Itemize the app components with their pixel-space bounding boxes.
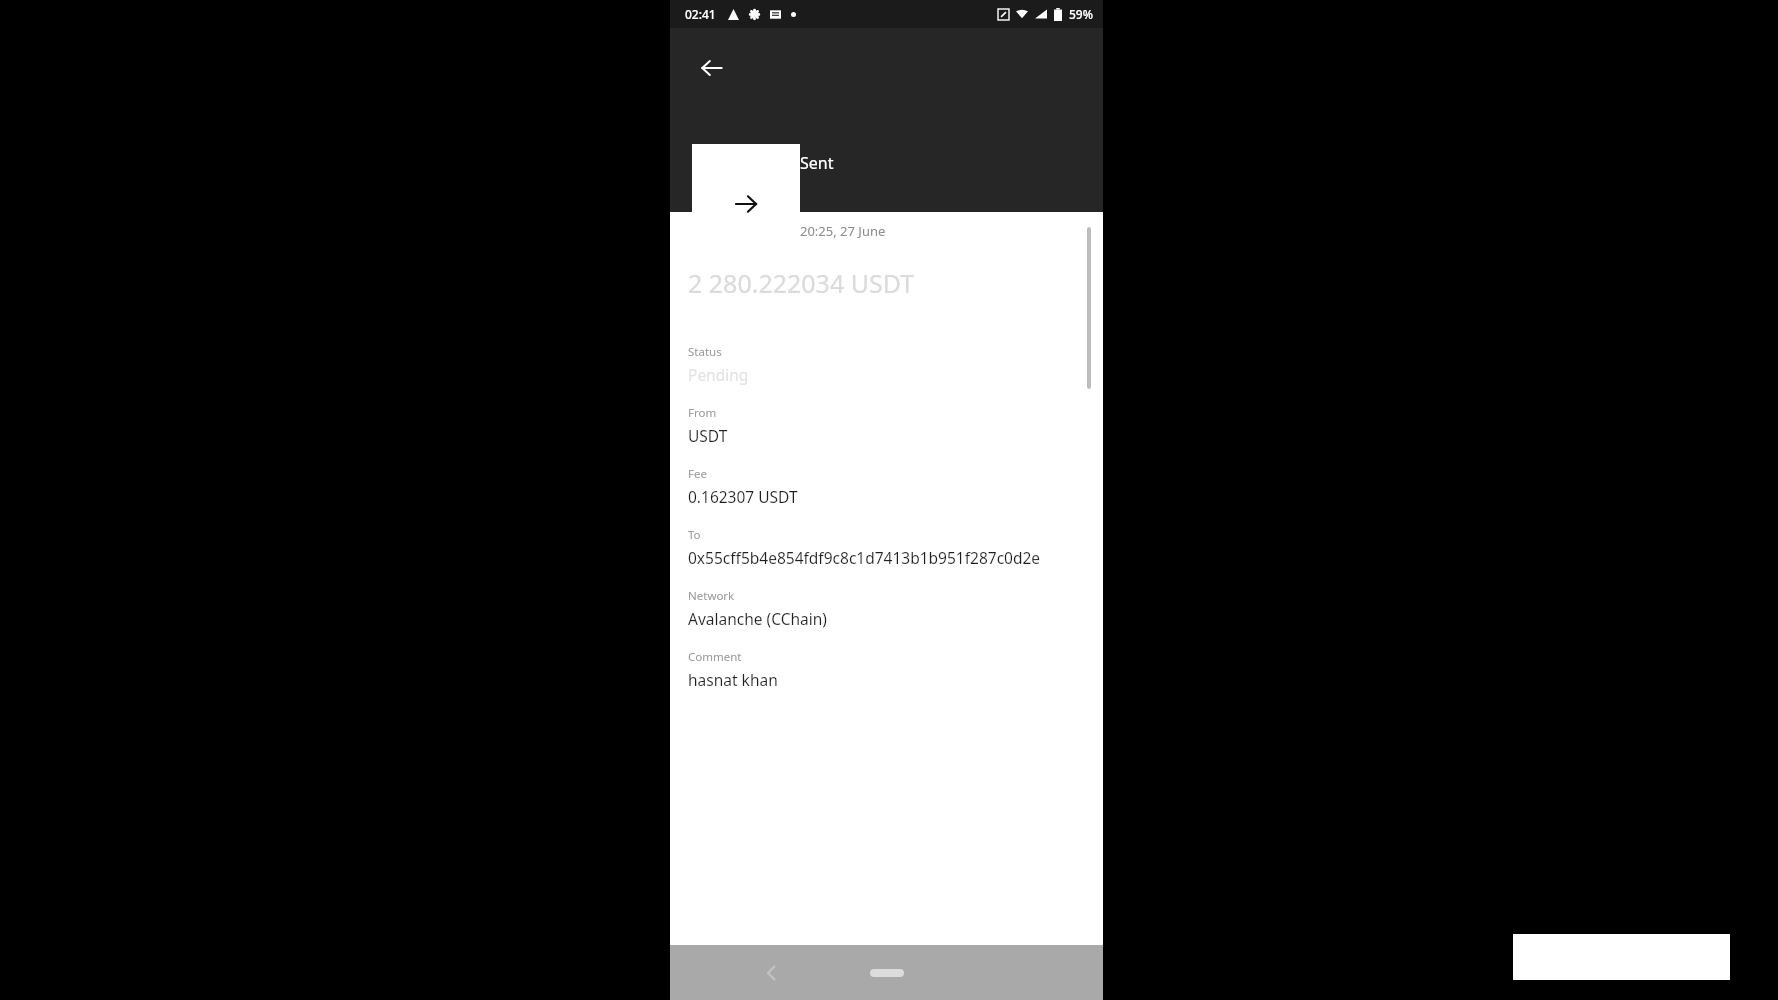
button[interactable]: Back bbox=[684, 40, 740, 96]
staticText: 20:25, 27 June bbox=[800, 222, 886, 240]
staticText: 0.162307 USDT bbox=[688, 486, 798, 507]
staticText: Comment bbox=[688, 649, 742, 665]
staticText: hasnat khan bbox=[688, 669, 778, 690]
button[interactable]: Sent transaction bbox=[692, 144, 800, 248]
staticText: USDT bbox=[688, 425, 728, 446]
staticText: 2 280.222034 USDT bbox=[688, 266, 915, 300]
staticText: Avalanche (CChain) bbox=[688, 608, 827, 629]
button[interactable]: Back bbox=[748, 949, 796, 997]
staticText: Pending bbox=[688, 364, 749, 385]
staticText: Sent bbox=[800, 152, 834, 174]
staticText: 0x55cff5b4e854fdf9c8c1d7413b1b951f287c0d… bbox=[688, 547, 1041, 568]
staticText: From bbox=[688, 405, 717, 421]
staticText: Network bbox=[688, 588, 735, 604]
button[interactable]: Home bbox=[857, 959, 917, 987]
staticText: Status bbox=[688, 344, 722, 360]
staticText: Fee bbox=[688, 466, 707, 482]
staticText: To bbox=[688, 527, 701, 543]
staticText: 02:41 bbox=[685, 6, 716, 22]
staticText: 59% bbox=[1069, 6, 1093, 22]
